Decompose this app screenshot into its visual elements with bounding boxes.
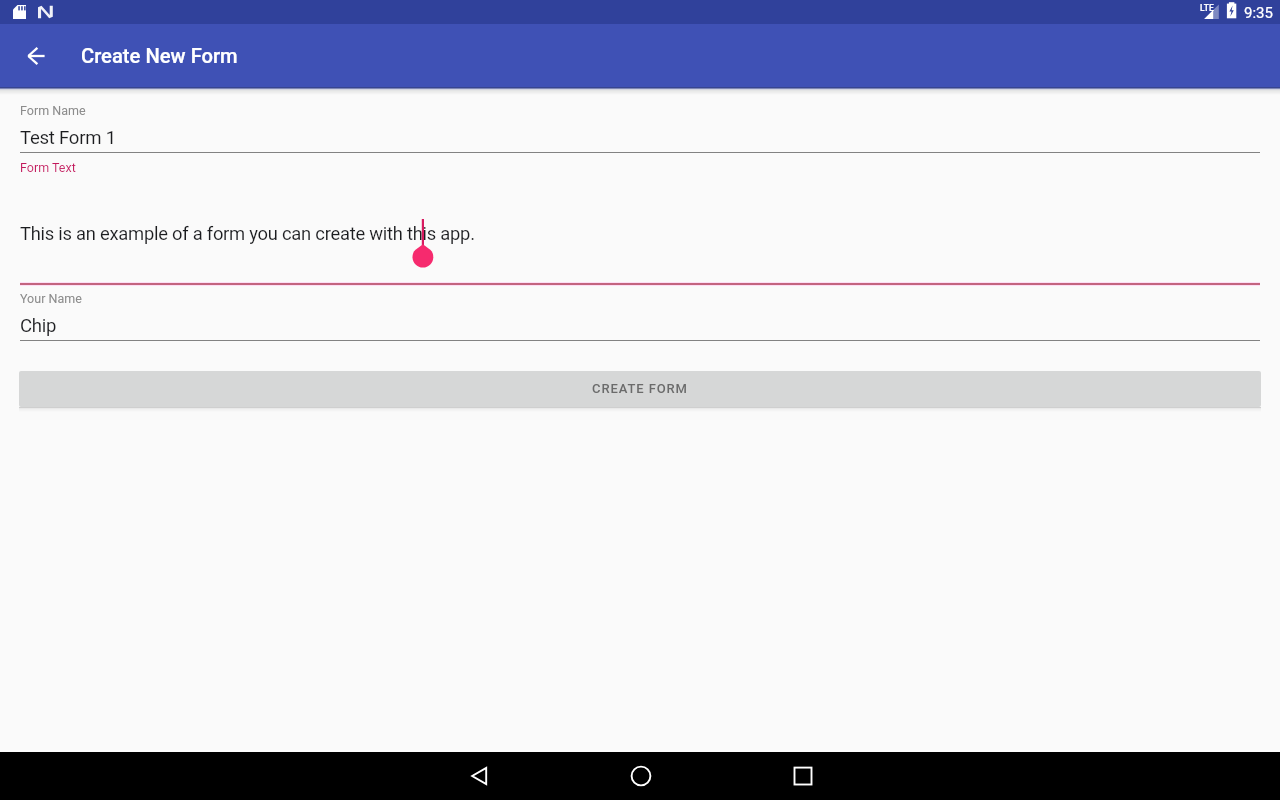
- button[interactable]: Recent apps: [723, 752, 883, 800]
- staticText: 9:35: [1244, 4, 1273, 22]
- staticText: Form Name: [20, 103, 86, 118]
- staticText: Chip: [20, 315, 57, 337]
- staticText: LTE: [1200, 3, 1214, 13]
- button[interactable]: Your Name: [0, 286, 1280, 341]
- staticText: Your Name: [20, 291, 82, 306]
- button[interactable]: CREATE FORM: [19, 371, 1261, 407]
- staticText: CREATE FORM: [592, 381, 688, 396]
- staticText: Create New Form: [81, 44, 238, 68]
- staticText: This is an example of a form you can cre…: [20, 223, 475, 245]
- button[interactable]: Navigate back: [0, 24, 72, 88]
- button[interactable]: Form Name: [0, 103, 1280, 153]
- button[interactable]: Back: [399, 752, 559, 800]
- button[interactable]: Form Text: [0, 153, 1280, 286]
- button[interactable]: Home: [561, 752, 721, 800]
- staticText: Test Form 1: [20, 127, 116, 149]
- staticText: Form Text: [20, 160, 76, 175]
